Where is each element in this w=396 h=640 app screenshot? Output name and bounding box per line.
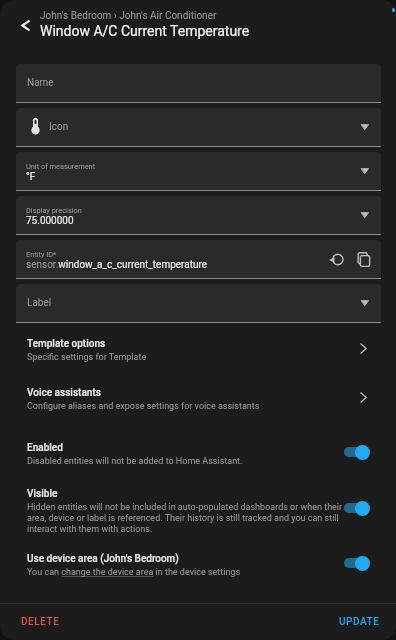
staticText: Label <box>27 297 52 309</box>
button[interactable]: Copy <box>352 248 374 270</box>
staticText: interact with them with actions. <box>27 524 153 535</box>
button[interactable]: Restore <box>325 248 347 270</box>
staticText: Template options <box>27 338 106 350</box>
button[interactable]: Use device area (John's Bedroom) <box>0 545 396 583</box>
staticText: Name <box>27 77 54 89</box>
staticText: 75.000000 <box>26 215 74 227</box>
button[interactable]: Toggle <box>344 500 370 516</box>
staticText: Configure aliases and expose settings fo… <box>27 401 260 412</box>
staticText: John's Bedroom › John's Air Conditioner <box>40 10 217 22</box>
staticText: °F <box>26 171 36 183</box>
staticText: Voice assistants <box>27 387 101 399</box>
staticText: UPDATE <box>339 616 380 628</box>
staticText: Display precision <box>26 206 82 215</box>
button[interactable]: Open menu <box>355 117 375 137</box>
staticText: Icon <box>49 121 69 133</box>
staticText: area, device or label is referenced. The… <box>27 513 339 524</box>
staticText: Window A/C Current Temperature <box>40 23 250 39</box>
button[interactable]: Back <box>7 7 41 41</box>
button[interactable]: UPDATE <box>331 611 388 633</box>
staticText: Visible <box>27 488 58 500</box>
staticText: sensor.window_a_c_current_temperature <box>26 259 208 271</box>
staticText: Unit of measurement <box>26 162 96 171</box>
staticText: DELETE <box>21 616 60 628</box>
button[interactable]: Entity ID* <box>16 240 381 278</box>
button[interactable]: Open menu <box>355 293 375 313</box>
button[interactable]: Toggle <box>344 555 370 571</box>
staticText: Hidden entities will not be included in … <box>27 502 343 513</box>
button[interactable]: Unit of measurement <box>16 152 381 190</box>
staticText: Specific settings for Template <box>27 352 147 363</box>
button[interactable]: Icon <box>16 108 381 146</box>
button[interactable]: Toggle <box>344 444 370 460</box>
button[interactable]: Open menu <box>355 205 375 225</box>
staticText: Entity ID* <box>26 250 57 259</box>
button[interactable]: Open menu <box>355 161 375 181</box>
button[interactable]: Name <box>16 64 381 102</box>
button[interactable]: Enabled <box>0 434 396 472</box>
button[interactable]: DELETE <box>13 611 68 633</box>
button[interactable]: Visible <box>0 480 396 538</box>
staticText: You can change the device area in the de… <box>27 567 241 578</box>
staticText: Use device area (John's Bedroom) <box>27 553 179 565</box>
staticText: Enabled <box>27 442 63 454</box>
button[interactable]: Display precision <box>16 196 381 234</box>
button[interactable]: Template options <box>0 330 396 378</box>
button[interactable]: Label <box>16 284 381 322</box>
staticText: Disabled entities will not be added to H… <box>27 456 243 467</box>
button[interactable]: Voice assistants <box>0 379 396 427</box>
